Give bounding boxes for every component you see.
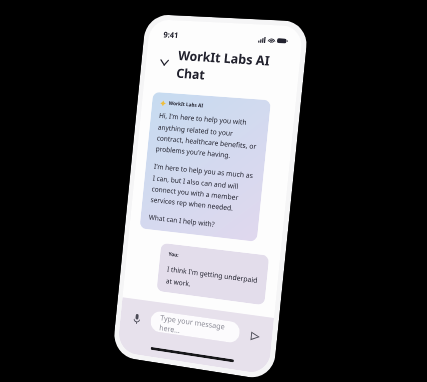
button[interactable]: You: <box>156 243 269 305</box>
staticText: I think I'm getting underpaid at work. <box>165 264 258 297</box>
staticText: I'm here to help you as much as I can, b… <box>150 162 255 215</box>
button[interactable]: WorkIt Labs AI <box>139 92 271 242</box>
button[interactable]: Collapse chat <box>157 55 172 69</box>
staticText: What can I help with? <box>148 213 216 230</box>
button[interactable]: Send message <box>246 327 263 345</box>
staticText: Type your message here... <box>159 312 231 342</box>
staticText: WorkIt Labs AI <box>168 100 204 109</box>
button[interactable]: Voice input <box>129 310 145 328</box>
staticText: Hi, I'm here to help you with anything r… <box>155 111 260 162</box>
button[interactable]: Type your message here... <box>150 310 241 344</box>
staticText: You: <box>168 251 179 259</box>
staticText: WorkIt Labs AI Chat <box>176 46 288 87</box>
staticText: 9:41 <box>163 29 179 40</box>
